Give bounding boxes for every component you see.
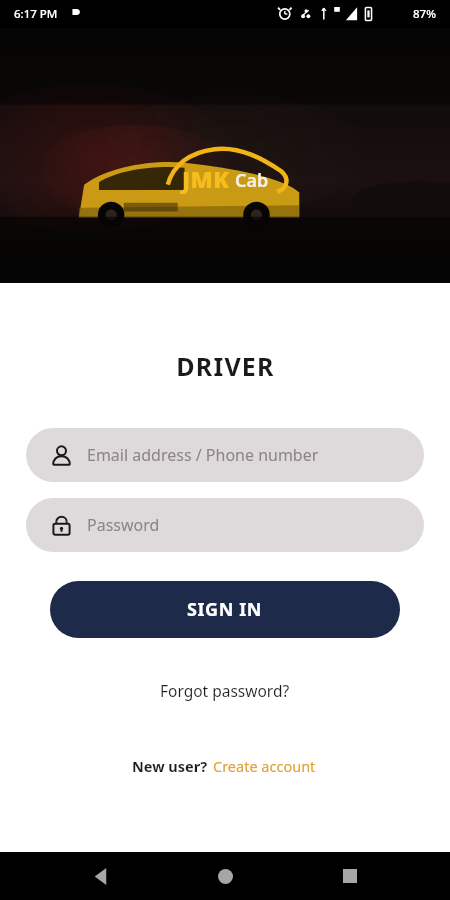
staticText: Create account <box>213 756 316 776</box>
staticText: SIGN IN <box>187 597 263 622</box>
staticText: New user? <box>132 756 211 776</box>
staticText: DRIVER <box>176 349 275 383</box>
staticText: Forgot password? <box>160 680 290 701</box>
button[interactable]: Create account <box>211 753 318 779</box>
staticText: Password <box>87 514 160 536</box>
staticText: JMK <box>182 163 230 194</box>
staticText: Cab <box>235 168 269 193</box>
button[interactable]: Home <box>201 852 249 900</box>
button[interactable]: Back <box>77 852 125 900</box>
button[interactable]: SIGN IN <box>50 581 400 638</box>
staticText: 6:17 PM <box>14 6 58 22</box>
staticText: Email address / Phone number <box>87 444 319 466</box>
button[interactable]: Recent apps <box>326 852 374 900</box>
staticText: 87% <box>413 6 436 22</box>
button[interactable]: Password <box>26 498 424 552</box>
button[interactable]: Email address / Phone number <box>26 428 424 482</box>
button[interactable]: Forgot password? <box>150 676 300 705</box>
